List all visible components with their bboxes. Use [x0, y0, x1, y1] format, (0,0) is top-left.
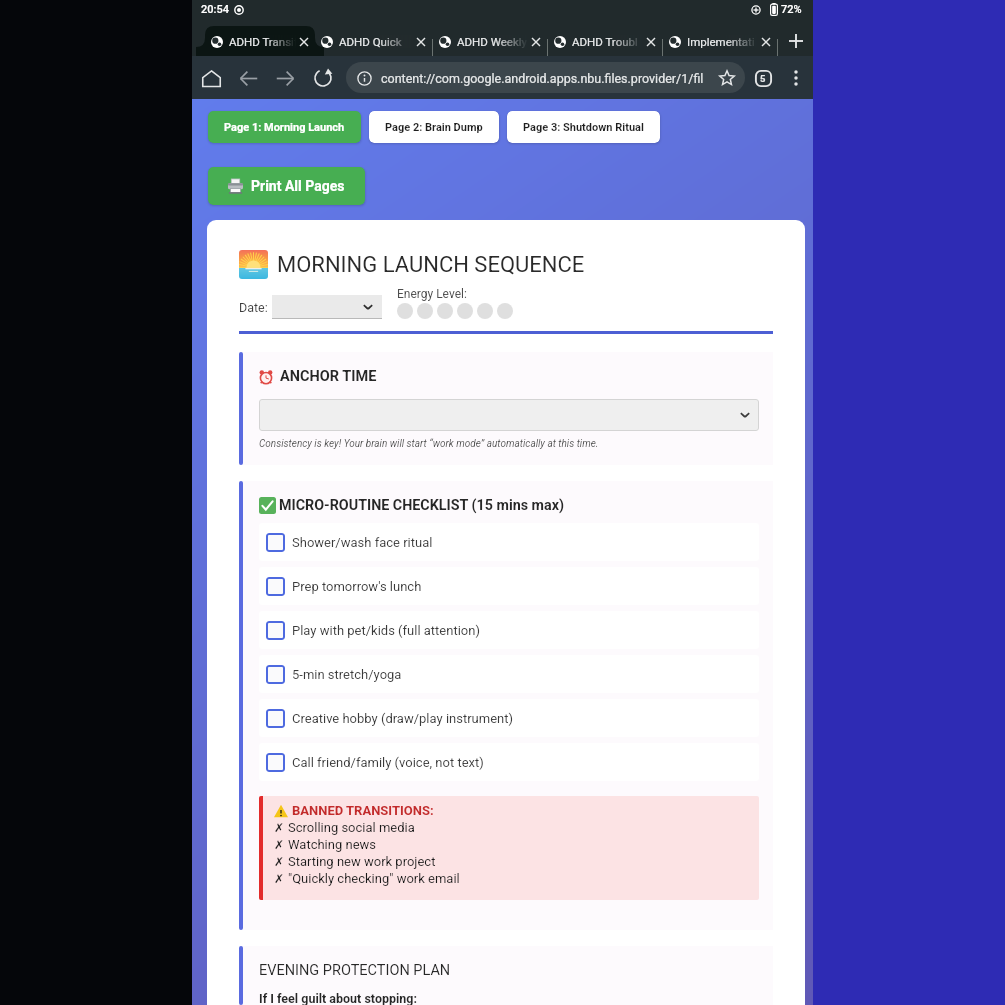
staticText: 5 [760, 73, 766, 84]
staticText: ADHD Troubl [572, 35, 638, 48]
button[interactable]: Energy level dot [477, 303, 493, 319]
button[interactable]: Home [192, 59, 230, 97]
staticText: ✗ [274, 872, 285, 886]
button[interactable]: Tabs [748, 63, 778, 93]
button[interactable]: Creative hobby (draw/play instrument) [259, 699, 759, 737]
staticText: Energy Level: [397, 287, 467, 301]
staticText: EVENING PROTECTION PLAN [259, 962, 451, 979]
staticText: Page 1: Morning Launch [224, 121, 345, 134]
staticText: Page 3: Shutdown Ritual [523, 121, 644, 134]
button[interactable]: Anchor time [259, 399, 759, 431]
button[interactable]: Shower/wash face ritual [259, 523, 759, 561]
button[interactable]: Implementati [663, 26, 777, 56]
button[interactable]: Forward [267, 59, 304, 97]
staticText: ADHD Quick [339, 35, 402, 48]
staticText: Shower/wash face ritual [292, 535, 433, 550]
staticText: Watching news [288, 837, 377, 852]
staticText: Implementati [687, 35, 755, 48]
staticText: 72% [781, 3, 802, 16]
staticText: ADHD Transit [229, 35, 296, 48]
staticText: ANCHOR TIME [280, 368, 377, 385]
other: Close tab [299, 37, 309, 47]
other: Bookmark [719, 70, 735, 86]
button[interactable]: Energy level dot [397, 303, 413, 319]
staticText: Print All Pages [251, 178, 345, 194]
button[interactable]: More options [782, 64, 810, 92]
button[interactable]: Back [230, 59, 267, 97]
button[interactable]: ADHD Transit [205, 26, 315, 56]
other: Close tab [646, 37, 656, 47]
button[interactable]: Page 3: Shutdown Ritual [507, 111, 660, 143]
staticText: BANNED TRANSITIONS: [292, 803, 434, 818]
staticText: MICRO-ROUTINE CHECKLIST (15 mins max) [279, 497, 564, 514]
button[interactable]: Prep tomorrow's lunch [259, 567, 759, 605]
button[interactable]: Reload [304, 59, 342, 97]
button[interactable]: Energy level dot [457, 303, 473, 319]
staticText: Prep tomorrow's lunch [292, 579, 422, 594]
staticText: MORNING LAUNCH SEQUENCE [277, 252, 585, 278]
button[interactable]: 5-min stretch/yoga [259, 655, 759, 693]
button[interactable]: ADHD Troubl [548, 26, 662, 56]
staticText: Play with pet/kids (full attention) [292, 623, 480, 638]
other: Close tab [416, 37, 426, 47]
staticText: Consistency is key! Your brain will star… [259, 438, 599, 450]
staticText: Creative hobby (draw/play instrument) [292, 711, 514, 726]
other: Close tab [761, 37, 771, 47]
staticText: ✗ [274, 821, 285, 835]
button[interactable]: Energy level dot [417, 303, 433, 319]
button[interactable]: Page 2: Brain Dump [369, 111, 499, 143]
staticText: content://com.google.android.apps.nbu.fi… [381, 71, 713, 86]
button[interactable]: Energy level dot [437, 303, 453, 319]
button[interactable]: ADHD Quick [315, 26, 432, 56]
staticText: 20:54 [201, 3, 229, 16]
staticText: ✗ [274, 855, 285, 869]
button[interactable]: Call friend/family (voice, not text) [259, 743, 759, 781]
staticText: Scrolling social media [288, 820, 415, 835]
staticText: Call friend/family (voice, not text) [292, 755, 484, 770]
staticText: ADHD Weekly [457, 35, 527, 48]
staticText: 5-min stretch/yoga [292, 667, 402, 682]
staticText: If I feel guilt about stopping: [259, 991, 418, 1005]
button[interactable]: Date [272, 295, 382, 318]
button[interactable]: Play with pet/kids (full attention) [259, 611, 759, 649]
button[interactable]: content://com.google.android.apps.nbu.fi… [346, 62, 745, 93]
staticText: Date: [239, 300, 268, 315]
button[interactable]: ADHD Weekly [433, 26, 547, 56]
button[interactable]: Energy level dot [497, 303, 513, 319]
button[interactable]: Print All Pages [208, 167, 365, 205]
other: Close tab [531, 37, 541, 47]
staticText: ✗ [274, 838, 285, 852]
button[interactable]: New tab [778, 26, 813, 56]
staticText: Page 2: Brain Dump [385, 121, 483, 134]
staticText: "Quickly checking" work email [288, 871, 460, 886]
staticText: Starting new work project [288, 854, 436, 869]
button[interactable]: Page 1: Morning Launch [208, 111, 361, 143]
